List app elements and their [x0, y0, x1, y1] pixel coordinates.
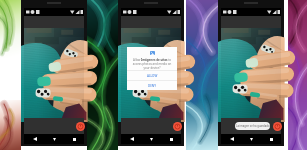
staticText: Allow Imágenes de uñas to access photos … — [130, 58, 174, 70]
button[interactable]: Save image — [273, 122, 282, 131]
staticText: La imagen se ha guardado — [236, 124, 270, 128]
button[interactable]: Back — [223, 134, 241, 144]
staticText: DENY — [148, 84, 156, 88]
button[interactable]: ALLOW — [127, 71, 177, 80]
button[interactable]: Home — [45, 134, 63, 144]
button[interactable]: Save image — [76, 122, 85, 131]
button[interactable]: Recents — [65, 134, 83, 144]
button[interactable]: Save image — [173, 122, 182, 131]
button[interactable]: Back — [26, 134, 44, 144]
staticText: ALLOW — [147, 74, 158, 78]
button[interactable]: Back — [123, 134, 141, 144]
button[interactable]: Recents — [262, 134, 280, 144]
button[interactable]: Recents — [162, 134, 180, 144]
button[interactable]: La imagen se ha guardado — [235, 122, 270, 130]
button[interactable]: Home — [142, 134, 160, 144]
button[interactable]: DENY — [127, 81, 177, 90]
button[interactable]: Home — [242, 134, 260, 144]
